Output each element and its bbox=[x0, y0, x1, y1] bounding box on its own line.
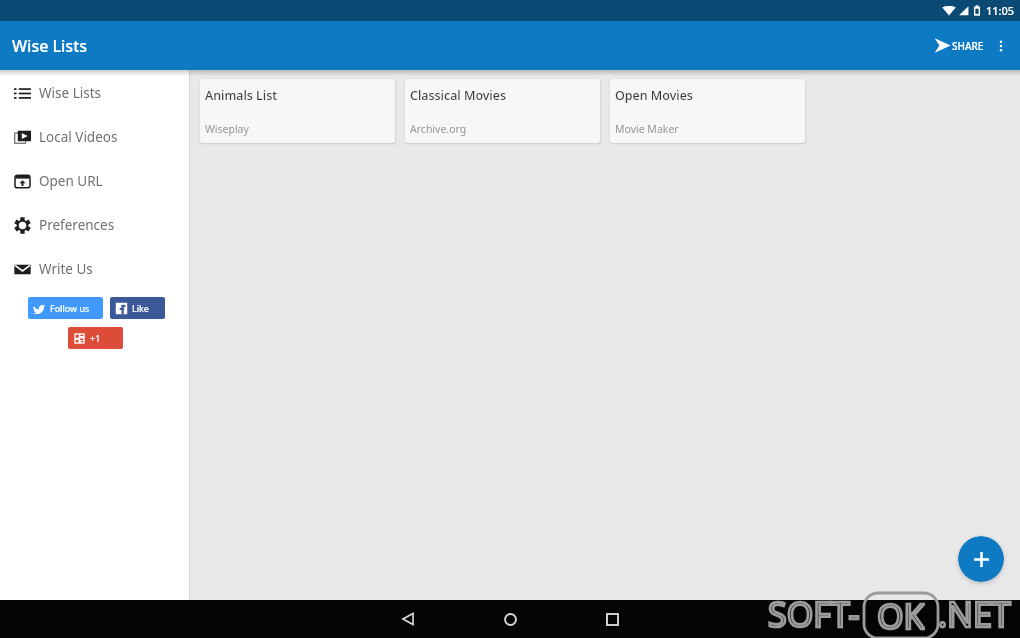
staticText: Follow us bbox=[50, 302, 90, 314]
staticText: Archive.org bbox=[410, 122, 467, 136]
button[interactable]: Recents bbox=[588, 600, 636, 638]
staticText: Write Us bbox=[39, 260, 93, 278]
staticText: .NET bbox=[938, 591, 1011, 637]
staticText: OK bbox=[877, 593, 925, 638]
staticText: Open Movies bbox=[615, 87, 693, 104]
staticText: SHARE bbox=[952, 39, 984, 53]
button[interactable]: Like bbox=[110, 297, 165, 319]
button[interactable]: Home bbox=[486, 600, 534, 638]
button[interactable]: Animals List bbox=[200, 79, 395, 143]
staticText: Movie Maker bbox=[615, 122, 679, 136]
staticText: Wise Lists bbox=[12, 35, 88, 57]
staticText: +1 bbox=[90, 332, 101, 344]
staticText: Classical Movies bbox=[410, 87, 506, 104]
staticText: Like bbox=[132, 302, 149, 314]
button[interactable]: Follow us bbox=[28, 297, 103, 319]
button[interactable]: Open Movies bbox=[610, 79, 805, 143]
button[interactable]: Classical Movies bbox=[405, 79, 600, 143]
button[interactable]: Write Us bbox=[0, 247, 190, 291]
staticText: Preferences bbox=[39, 216, 115, 234]
button[interactable]: Open URL bbox=[0, 159, 190, 203]
staticText: Animals List bbox=[205, 87, 278, 104]
staticText: SOFT- bbox=[768, 591, 860, 637]
button[interactable]: Add list bbox=[958, 536, 1004, 582]
staticText: Wise Lists bbox=[39, 84, 101, 102]
button[interactable]: More options bbox=[986, 31, 1016, 61]
button[interactable]: Preferences bbox=[0, 203, 190, 247]
staticText: Wiseplay bbox=[205, 122, 249, 136]
button[interactable]: Wise Lists bbox=[0, 71, 190, 115]
button[interactable]: +1 bbox=[68, 327, 123, 349]
staticText: Open URL bbox=[39, 172, 103, 190]
staticText: 11:05 bbox=[986, 3, 1015, 18]
button[interactable]: Back bbox=[384, 600, 432, 638]
button[interactable]: Local Videos bbox=[0, 115, 190, 159]
staticText: Local Videos bbox=[39, 128, 118, 146]
button[interactable]: SHARE bbox=[928, 29, 986, 62]
